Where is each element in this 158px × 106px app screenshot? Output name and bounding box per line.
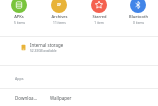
other: Starred	[91, 0, 107, 13]
staticText: Archives	[51, 14, 68, 19]
staticText: Downloa...	[15, 95, 38, 101]
staticText: APKs	[14, 14, 24, 19]
button[interactable]: Wallpaper	[50, 95, 72, 101]
button[interactable]: Bluetooth	[119, 0, 157, 25]
other: Internal storage	[20, 44, 27, 51]
staticText: 0 items	[133, 21, 144, 25]
staticText: 1 item	[94, 21, 104, 25]
staticText: 52.33GB available	[30, 49, 57, 53]
button[interactable]: Downloa...	[15, 95, 38, 101]
other: APKs	[11, 0, 27, 13]
other: Bluetooth	[130, 0, 146, 13]
staticText: Apps	[15, 76, 24, 81]
staticText: Wallpaper	[50, 95, 72, 101]
staticText: Internal storage	[30, 42, 64, 48]
other: Archives	[51, 0, 67, 13]
staticText: ZIP	[57, 3, 61, 7]
button[interactable]: Internal storage	[0, 37, 158, 57]
button[interactable]: APKs	[0, 0, 39, 25]
staticText: Starred	[92, 14, 107, 19]
staticText: 11 items	[53, 21, 66, 25]
staticText: 5 items	[14, 21, 25, 25]
button[interactable]: Archives	[39, 0, 79, 25]
staticText: Bluetooth	[129, 14, 148, 19]
button[interactable]: Starred	[79, 0, 119, 25]
